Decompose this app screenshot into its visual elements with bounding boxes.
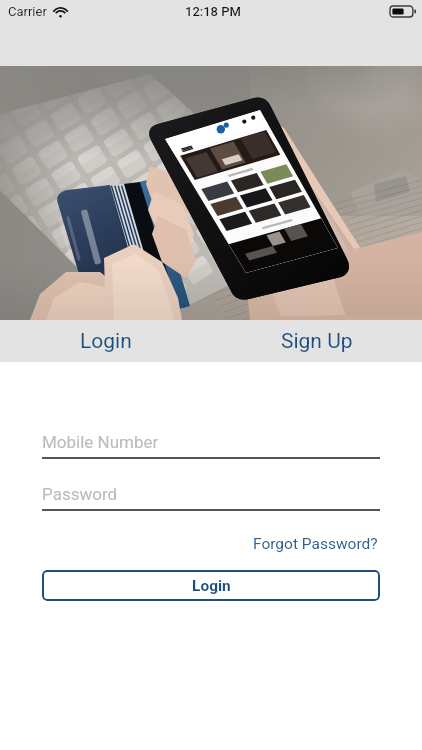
button[interactable]: Login [42, 570, 380, 601]
button[interactable]: Mobile Number [42, 432, 380, 459]
staticText: Forgot Password? [253, 535, 378, 553]
staticText: 12:18 PM [185, 4, 241, 19]
staticText: Login [192, 577, 231, 595]
staticText: Mobile Number [42, 432, 159, 452]
staticText: Carrier [8, 4, 47, 19]
button[interactable]: Login [0, 320, 211, 362]
button[interactable]: Password [42, 484, 380, 511]
button[interactable]: Forgot Password? [251, 532, 380, 556]
staticText: Sign Up [281, 329, 353, 354]
staticText: Login [80, 329, 132, 354]
staticText: Password [42, 484, 118, 504]
button[interactable]: Sign Up [211, 320, 422, 362]
